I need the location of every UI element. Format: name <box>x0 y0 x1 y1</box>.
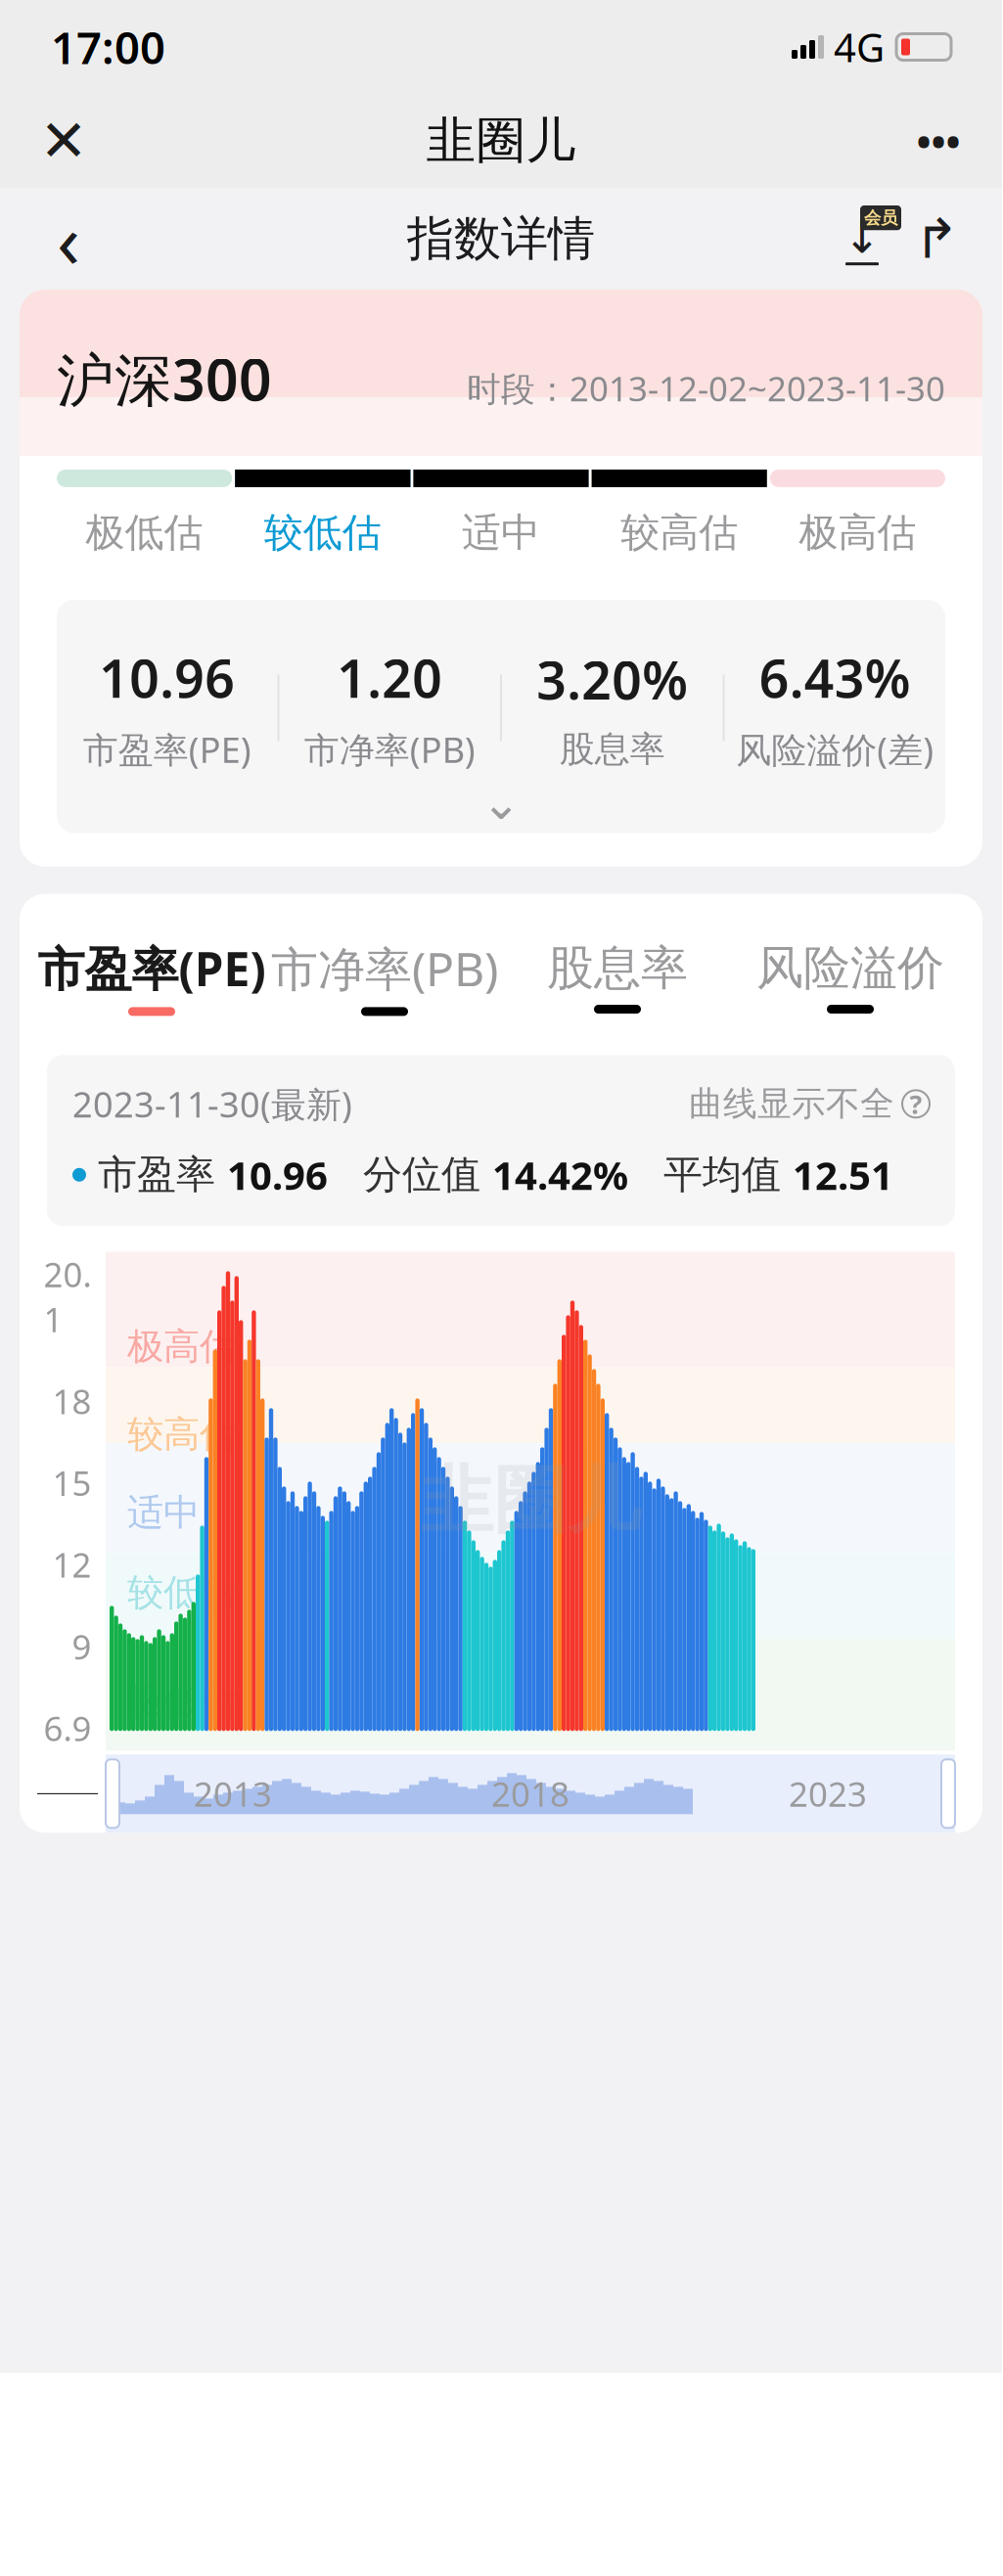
staticText: 18 <box>52 1378 91 1424</box>
staticText: ‹ <box>57 189 80 289</box>
staticText: 指数详情 <box>407 210 595 268</box>
staticText: 会员 <box>864 207 897 228</box>
staticText: 股息率 <box>547 939 688 997</box>
button[interactable]: Close <box>20 97 108 185</box>
staticText: ⌄ <box>481 776 521 830</box>
staticText: 9 <box>72 1624 91 1669</box>
staticText: 4G <box>834 21 885 73</box>
staticText: 1.20 <box>337 643 443 712</box>
staticText: 较高估 <box>621 509 738 557</box>
staticText: 市盈率(PE) <box>83 726 251 773</box>
staticText: 极高估 <box>799 509 916 557</box>
staticText: 6.9 <box>44 1706 91 1751</box>
staticText: 较低估 <box>127 1570 236 1615</box>
button[interactable]: Back <box>29 200 108 278</box>
staticText: 极低估 <box>127 1680 236 1725</box>
staticText: 适中 <box>127 1490 200 1535</box>
staticText: ↱ <box>913 208 959 270</box>
staticText: ••• <box>916 115 960 167</box>
staticText: 12.51 <box>793 1149 893 1201</box>
button[interactable]: Share <box>900 203 973 275</box>
button[interactable]: More options <box>894 97 982 185</box>
staticText: 2023 <box>789 1771 867 1816</box>
staticText: 6.43% <box>759 643 911 712</box>
staticText: 3.20% <box>537 645 688 714</box>
staticText: 较低估 <box>264 509 381 557</box>
staticText: 市净率(PB) <box>271 937 498 999</box>
staticText: 10.96 <box>99 643 235 712</box>
staticText: 风险溢价 <box>756 939 944 997</box>
button[interactable]: 风险溢价 <box>734 939 967 1014</box>
staticText: 较高估 <box>127 1412 236 1457</box>
button[interactable]: 市盈率(PE) <box>35 937 268 1016</box>
staticText: 韭圈儿 <box>426 110 576 171</box>
button[interactable]: Expand details <box>57 773 945 833</box>
staticText: 时段：2013-12-02~2023-11-30 <box>467 366 945 411</box>
staticText: 2023-11-30(最新) <box>72 1080 352 1127</box>
staticText: 极低估 <box>86 509 203 557</box>
staticText: 曲线显示不全 <box>689 1083 894 1125</box>
staticText: 14.42% <box>492 1149 628 1201</box>
button[interactable]: 股息率 <box>501 939 734 1014</box>
staticText: 12 <box>52 1542 91 1587</box>
staticText: ✕ <box>40 108 88 173</box>
staticText: 10.96 <box>227 1149 328 1201</box>
staticText: 风险溢价(差) <box>736 726 934 773</box>
staticText: 15 <box>52 1460 91 1505</box>
staticText: 股息率 <box>560 728 665 771</box>
staticText: 17:00 <box>51 18 165 76</box>
staticText: 平均值 <box>628 1151 793 1199</box>
staticText: 市盈率(PE) <box>38 937 266 999</box>
staticText: 适中 <box>462 509 540 557</box>
staticText: 市净率(PB) <box>304 726 475 773</box>
staticText: 2018 <box>491 1771 570 1816</box>
button[interactable]: Download, members only <box>824 201 900 277</box>
staticText: 20.1 <box>44 1252 91 1342</box>
staticText: 分位值 <box>328 1151 492 1199</box>
staticText: ? <box>910 1087 922 1121</box>
staticText: 韭圈儿 <box>420 1456 640 1546</box>
staticText: 市盈率 <box>86 1151 227 1199</box>
button[interactable]: 市净率(PB) <box>268 937 501 1016</box>
staticText: 沪深300 <box>57 340 272 417</box>
staticText: 极高估 <box>127 1324 236 1369</box>
staticText: 2013 <box>194 1771 272 1816</box>
staticText: ↓ <box>843 212 881 262</box>
